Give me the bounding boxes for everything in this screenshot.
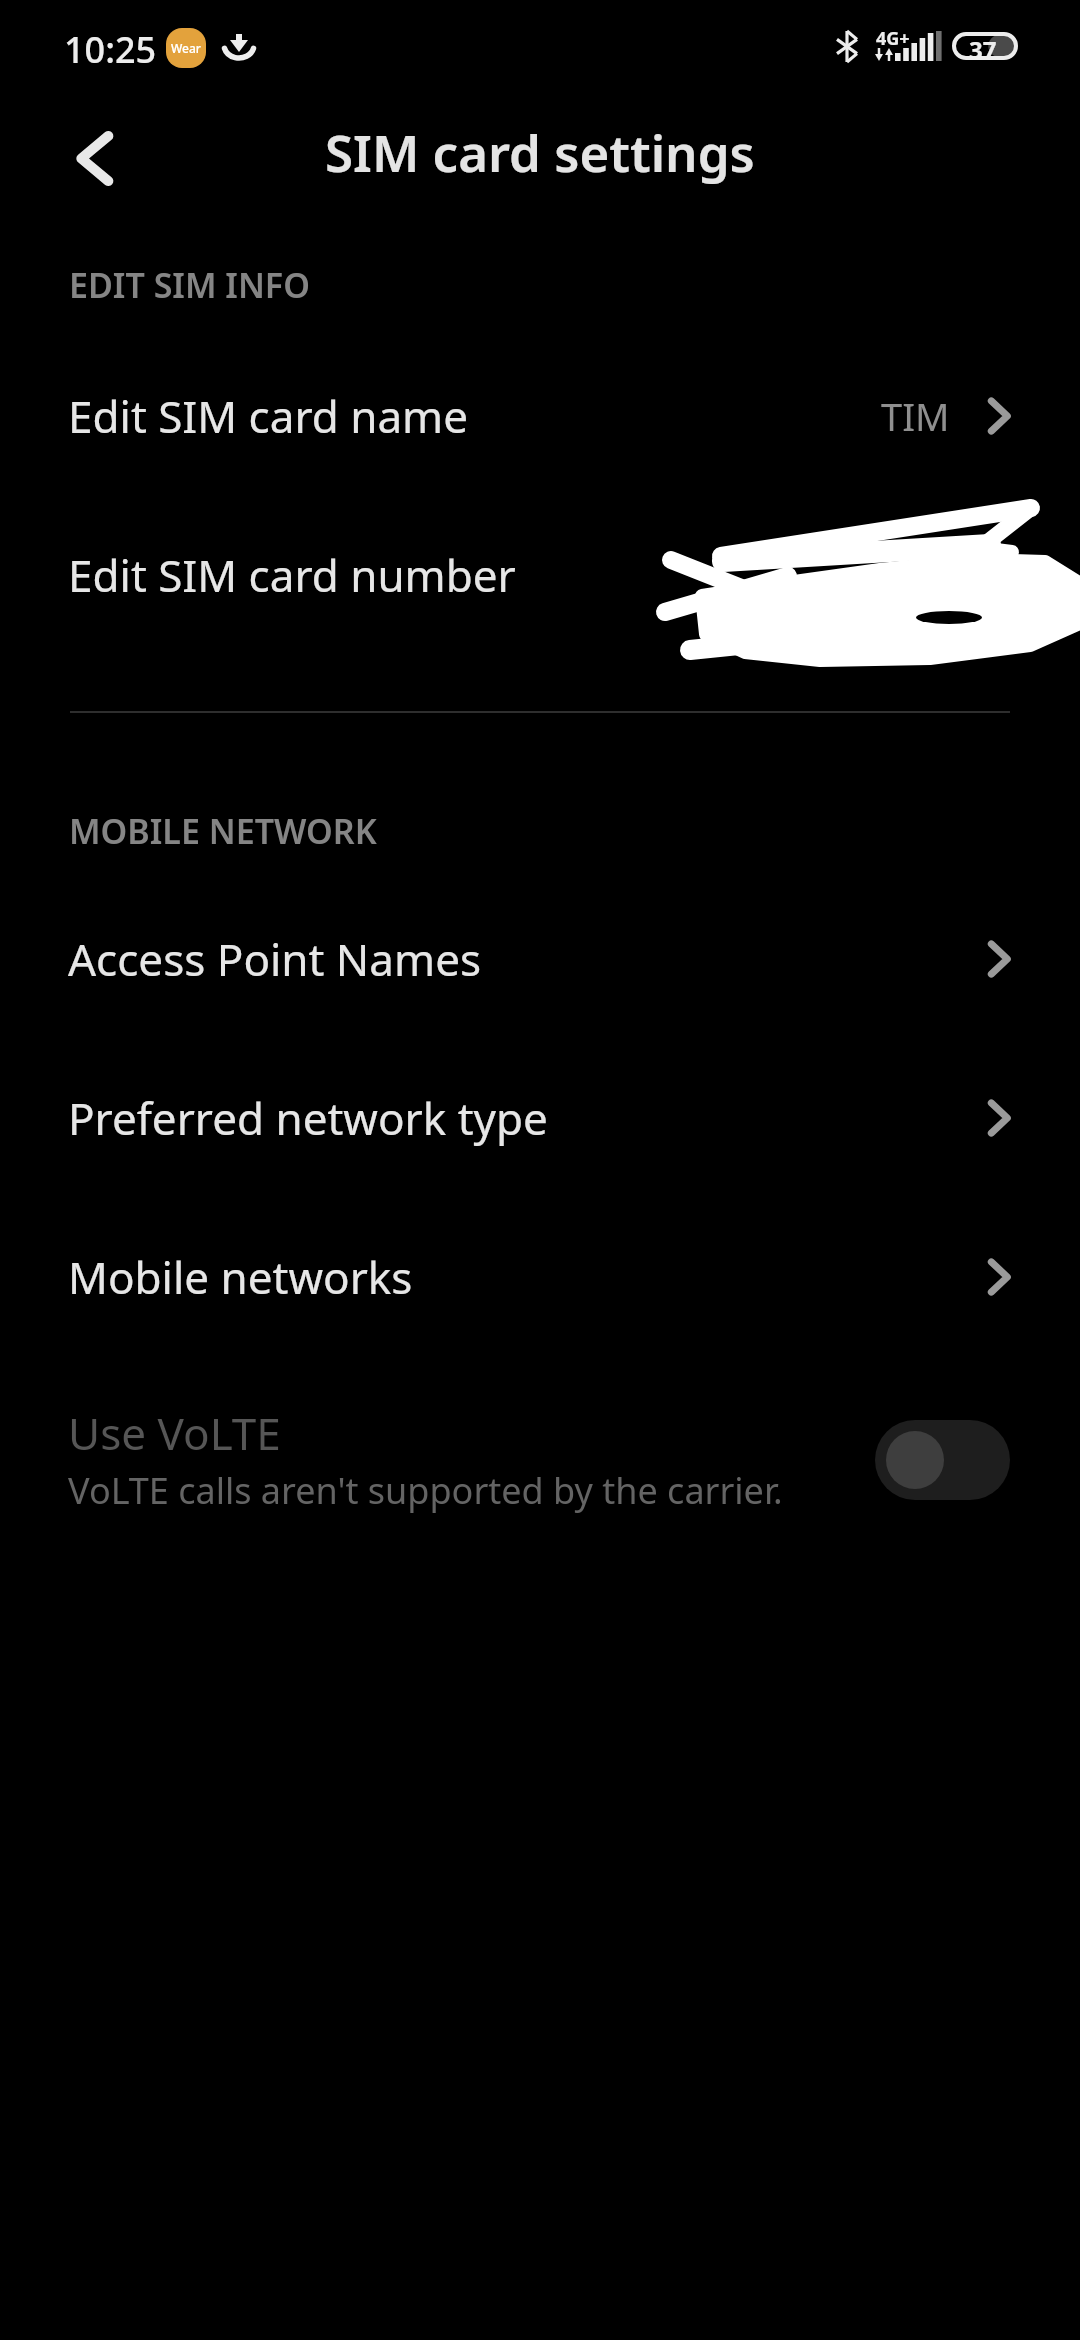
staticText: Edit SIM card name bbox=[68, 386, 469, 446]
staticText: 37 bbox=[969, 33, 997, 66]
staticText: Mobile networks bbox=[68, 1247, 413, 1307]
staticText: 10:25 bbox=[64, 25, 157, 74]
staticText: Edit SIM card number bbox=[68, 545, 516, 605]
staticText: SIM card settings bbox=[325, 117, 755, 186]
staticText: Preferred network type bbox=[68, 1088, 548, 1148]
staticText: Wear bbox=[171, 40, 201, 56]
staticText: EDIT SIM INFO bbox=[69, 262, 310, 308]
button[interactable] bbox=[875, 1420, 1010, 1500]
button[interactable]: Edit SIM card number bbox=[0, 495, 1080, 655]
button[interactable] bbox=[56, 120, 132, 196]
staticText: VoLTE calls aren't supported by the carr… bbox=[68, 1466, 783, 1515]
staticText: TIM bbox=[881, 390, 950, 442]
staticText: 4G+ bbox=[876, 26, 910, 51]
staticText: Use VoLTE bbox=[68, 1403, 281, 1463]
staticText: MOBILE NETWORK bbox=[69, 808, 377, 854]
button[interactable]: Use VoLTE bbox=[0, 1370, 1080, 1540]
staticText: Access Point Names bbox=[68, 929, 482, 989]
button[interactable]: Access Point Names bbox=[0, 879, 1080, 1039]
button[interactable]: Mobile networks bbox=[0, 1197, 1080, 1357]
button[interactable]: Edit SIM card name bbox=[0, 336, 1080, 496]
button[interactable]: Preferred network type bbox=[0, 1038, 1080, 1198]
